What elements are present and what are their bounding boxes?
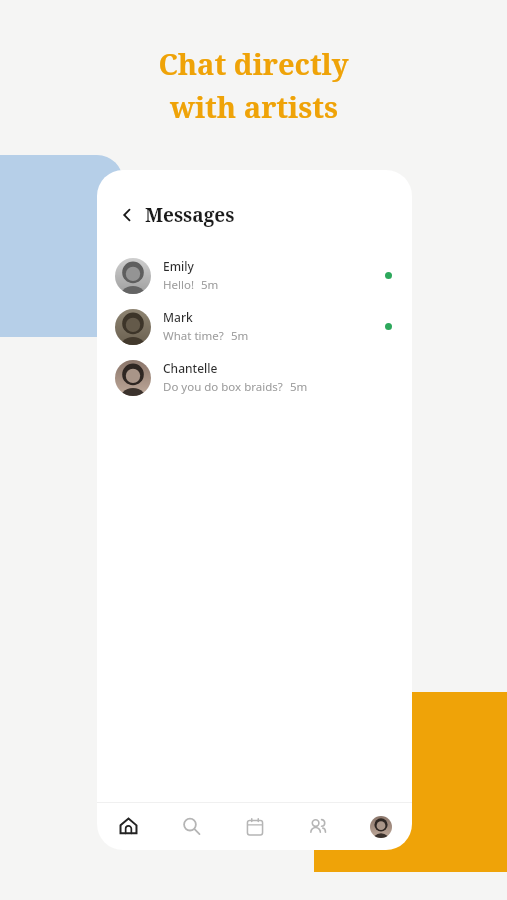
staticText: 5m bbox=[290, 379, 308, 395]
staticText: Emily bbox=[163, 258, 194, 274]
staticText: 5m bbox=[231, 328, 249, 344]
button[interactable]: Emily bbox=[97, 250, 412, 301]
staticText: Chantelle bbox=[163, 360, 218, 376]
button[interactable]: Calendar bbox=[223, 803, 286, 850]
button[interactable]: Profile bbox=[349, 803, 412, 850]
staticText: Hello! bbox=[163, 277, 194, 293]
staticText: What time? bbox=[163, 328, 224, 344]
staticText: Do you do box braids? bbox=[163, 379, 283, 395]
button[interactable]: Chantelle bbox=[97, 352, 412, 403]
button[interactable]: Mark bbox=[97, 301, 412, 352]
button[interactable]: Community bbox=[286, 803, 349, 850]
staticText: with artists bbox=[170, 87, 338, 126]
button[interactable]: Search bbox=[160, 803, 223, 850]
staticText: Mark bbox=[163, 309, 193, 325]
button[interactable]: Home bbox=[97, 803, 160, 850]
staticText: Chat directly bbox=[158, 44, 349, 83]
button[interactable]: Back bbox=[115, 203, 139, 227]
staticText: Messages bbox=[145, 202, 235, 228]
staticText: 5m bbox=[201, 277, 219, 293]
